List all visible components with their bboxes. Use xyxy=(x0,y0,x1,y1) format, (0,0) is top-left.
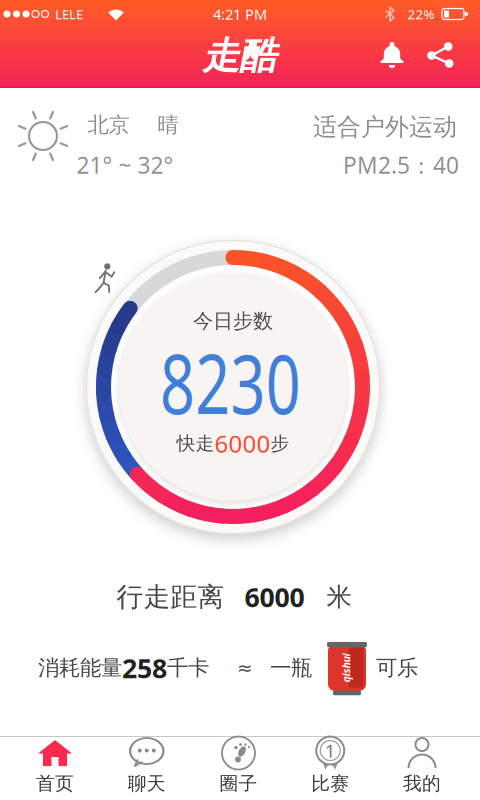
staticText: 6000 xyxy=(214,428,270,459)
staticText: PM2.5：40 xyxy=(343,150,459,180)
staticText: 行走距离 xyxy=(116,581,224,613)
staticText: 晴 xyxy=(157,112,178,138)
staticText: 比赛 xyxy=(311,772,349,795)
staticText: 适合户外运动 xyxy=(313,112,457,142)
button[interactable]: Notifications xyxy=(379,41,405,69)
staticText: LELE xyxy=(55,5,83,23)
staticText: 首页 xyxy=(36,772,74,795)
staticText: qishui xyxy=(331,661,360,675)
staticText: 快走 xyxy=(176,432,214,455)
staticText: 米 xyxy=(326,581,351,612)
button[interactable]: 1 xyxy=(287,737,373,797)
staticText: 258 xyxy=(122,650,167,686)
button[interactable]: 我的 xyxy=(379,737,465,797)
button[interactable]: 聊天 xyxy=(104,737,190,797)
staticText: 可乐 xyxy=(376,655,418,681)
staticText: 1 xyxy=(325,738,336,763)
staticText: 一瓶 xyxy=(270,655,312,681)
staticText: 步 xyxy=(270,432,289,455)
staticText: 21° ~ 32° xyxy=(76,150,173,180)
button[interactable]: 首页 xyxy=(12,737,98,797)
staticText: 消耗能量 xyxy=(38,655,122,681)
staticText: 聊天 xyxy=(128,772,166,795)
staticText: 今日步数 xyxy=(193,309,273,333)
staticText: 走酷 xyxy=(202,33,276,79)
staticText: 我的 xyxy=(403,772,441,795)
staticText: 8230 xyxy=(136,328,324,436)
button[interactable]: 圈子 xyxy=(195,737,281,797)
staticText: 6000 xyxy=(244,579,304,615)
staticText: 千卡 xyxy=(167,655,209,681)
staticText: 圈子 xyxy=(219,772,257,795)
staticText: 4:21 PM xyxy=(213,4,267,24)
button[interactable]: Share xyxy=(429,42,453,68)
staticText: 22% xyxy=(407,5,434,23)
staticText: ≈ xyxy=(237,657,253,679)
staticText: 北京 xyxy=(87,112,129,138)
